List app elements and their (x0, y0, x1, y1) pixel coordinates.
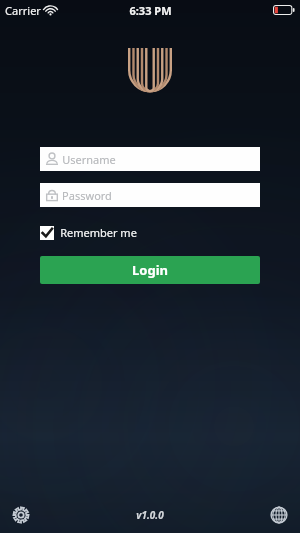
staticText: Remember me (60, 225, 137, 240)
staticText: v1.0.0 (136, 508, 164, 522)
button[interactable]: Password (40, 183, 260, 207)
staticText: Username (62, 152, 116, 167)
button[interactable]: Remember me (40, 225, 137, 240)
button[interactable]: Language (264, 500, 294, 530)
button[interactable]: Login (40, 256, 260, 284)
button[interactable]: Username (40, 147, 260, 171)
staticText: Carrier (5, 3, 41, 18)
button[interactable]: Settings (6, 500, 36, 530)
staticText: 6:33 PM (129, 3, 172, 18)
staticText: Login (132, 261, 168, 279)
staticText: Password (62, 188, 112, 203)
